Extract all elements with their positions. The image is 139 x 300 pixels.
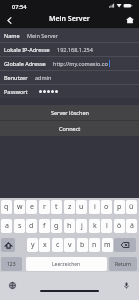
staticText: Leerzeichen bbox=[52, 261, 81, 268]
staticText: Name bbox=[4, 32, 20, 39]
staticText: a bbox=[5, 221, 9, 231]
button[interactable]: o bbox=[101, 200, 112, 214]
staticText: http://my.comexio.co bbox=[53, 60, 108, 67]
staticText: Mein Server bbox=[27, 32, 58, 39]
staticText: l bbox=[106, 221, 108, 231]
staticText: Globale Adresse bbox=[4, 60, 46, 67]
staticText: Benutzer bbox=[4, 74, 28, 81]
button[interactable]: n bbox=[89, 238, 100, 252]
staticText: Mein Server bbox=[49, 14, 90, 24]
button[interactable]: Home bbox=[121, 12, 139, 28]
staticText: y bbox=[31, 240, 35, 250]
staticText: n bbox=[92, 240, 97, 250]
staticText: i bbox=[94, 202, 96, 212]
button[interactable]: Benutzer bbox=[0, 71, 139, 84]
button[interactable]: m bbox=[102, 238, 113, 252]
staticText: g bbox=[54, 221, 59, 231]
staticText: t bbox=[55, 202, 58, 212]
button[interactable]: r bbox=[39, 200, 50, 214]
button[interactable]: y bbox=[27, 238, 38, 252]
button[interactable]: h bbox=[64, 219, 75, 233]
button[interactable]: Leerzeichen bbox=[26, 257, 107, 271]
staticText: Lokale IP-Adresse bbox=[4, 46, 50, 53]
staticText: x bbox=[43, 240, 47, 250]
staticText: d bbox=[29, 221, 34, 231]
staticText: admin bbox=[35, 74, 52, 81]
button[interactable]: i bbox=[89, 200, 100, 214]
staticText: z bbox=[68, 202, 72, 212]
staticText: 123 bbox=[7, 261, 16, 268]
staticText: v bbox=[68, 240, 72, 250]
button[interactable]: Passwort bbox=[0, 85, 139, 98]
button[interactable]: ä bbox=[126, 219, 137, 233]
button[interactable]: p bbox=[114, 200, 125, 214]
button[interactable]: v bbox=[64, 238, 75, 252]
staticText: ö bbox=[117, 221, 122, 231]
button[interactable]: g bbox=[51, 219, 62, 233]
staticText: p bbox=[117, 202, 122, 212]
button[interactable]: Backspace bbox=[114, 238, 136, 252]
button[interactable]: a bbox=[1, 219, 12, 233]
button[interactable]: t bbox=[51, 200, 62, 214]
button[interactable]: k bbox=[89, 219, 100, 233]
staticText: Connect bbox=[59, 125, 81, 132]
button[interactable]: j bbox=[76, 219, 87, 233]
button[interactable]: Globale Adresse bbox=[0, 57, 139, 70]
button[interactable]: ü bbox=[126, 200, 137, 214]
button[interactable]: e bbox=[26, 200, 37, 214]
staticText: c bbox=[56, 240, 60, 250]
staticText: k bbox=[93, 221, 97, 231]
staticText: Return bbox=[115, 261, 131, 268]
staticText: o bbox=[104, 202, 109, 212]
button[interactable]: w bbox=[14, 200, 25, 214]
staticText: j bbox=[81, 221, 83, 231]
staticText: u bbox=[79, 202, 84, 212]
staticText: ü bbox=[129, 202, 134, 212]
button[interactable]: Name bbox=[0, 29, 139, 42]
staticText: Passwort bbox=[4, 88, 28, 95]
button[interactable]: l bbox=[101, 219, 112, 233]
staticText: 07:54 bbox=[12, 3, 27, 11]
button[interactable]: Shift bbox=[1, 238, 15, 252]
button[interactable]: f bbox=[39, 219, 50, 233]
button[interactable]: Next keyboard bbox=[7, 280, 17, 290]
staticText: b bbox=[80, 240, 85, 250]
button[interactable]: d bbox=[26, 219, 37, 233]
staticText: Server löschen bbox=[51, 109, 89, 116]
button[interactable]: Dictation bbox=[121, 280, 131, 290]
button[interactable]: c bbox=[52, 238, 63, 252]
staticText: ä bbox=[130, 221, 134, 231]
button[interactable]: z bbox=[64, 200, 75, 214]
button[interactable]: Return bbox=[109, 257, 137, 271]
button[interactable]: s bbox=[14, 219, 25, 233]
staticText: f bbox=[43, 221, 46, 231]
staticText: 192.168.1.254 bbox=[57, 46, 93, 53]
button[interactable]: Connect bbox=[0, 121, 139, 136]
button[interactable]: 123 bbox=[1, 257, 22, 271]
button[interactable]: Lokale IP-Adresse bbox=[0, 43, 139, 56]
staticText: h bbox=[67, 221, 72, 231]
button[interactable]: ö bbox=[114, 219, 125, 233]
button[interactable]: u bbox=[76, 200, 87, 214]
button[interactable]: b bbox=[77, 238, 88, 252]
staticText: w bbox=[17, 202, 23, 212]
staticText: q bbox=[4, 202, 9, 212]
staticText: m bbox=[104, 240, 111, 250]
button[interactable]: Server löschen bbox=[0, 105, 139, 120]
staticText: s bbox=[18, 221, 22, 231]
staticText: r bbox=[43, 202, 46, 212]
button[interactable]: x bbox=[39, 238, 50, 252]
button[interactable]: Back bbox=[0, 12, 18, 28]
button[interactable]: q bbox=[1, 200, 12, 214]
staticText: e bbox=[30, 202, 34, 212]
